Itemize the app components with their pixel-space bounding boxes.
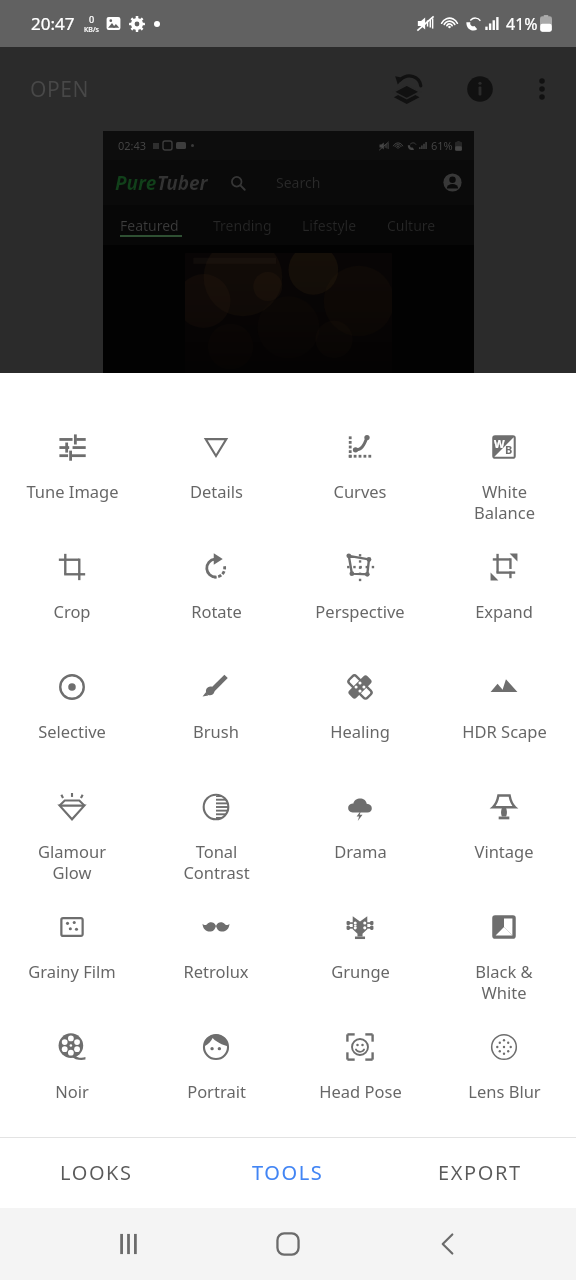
staticText: Black & White bbox=[475, 960, 533, 1004]
staticText: Lens Blur bbox=[468, 1080, 541, 1102]
staticText: Crop bbox=[53, 600, 91, 622]
button[interactable]: Tune Image bbox=[0, 433, 144, 553]
staticText: Portrait bbox=[187, 1080, 246, 1102]
button[interactable]: Brush bbox=[144, 673, 288, 793]
button[interactable]: Back bbox=[368, 1208, 528, 1280]
staticText: Trending bbox=[213, 216, 272, 235]
button[interactable]: Selective bbox=[0, 673, 144, 793]
button[interactable]: Grainy Film bbox=[0, 913, 144, 1033]
staticText: W bbox=[494, 436, 505, 451]
button[interactable]: EXPORT bbox=[384, 1137, 576, 1208]
staticText: 41% bbox=[506, 13, 538, 35]
button[interactable]: Head Pose bbox=[288, 1033, 432, 1137]
button[interactable]: Drama bbox=[288, 793, 432, 913]
button[interactable]: Details bbox=[144, 433, 288, 553]
button[interactable]: Info bbox=[454, 63, 506, 115]
button[interactable]: Rotate bbox=[144, 553, 288, 673]
button[interactable]: HDR Scape bbox=[432, 673, 576, 793]
staticText: Culture bbox=[387, 216, 436, 235]
staticText: Tune Image bbox=[26, 480, 119, 502]
staticText: Curves bbox=[333, 480, 387, 502]
staticText: 20:47 bbox=[31, 12, 75, 35]
button[interactable]: Recent apps bbox=[48, 1208, 208, 1280]
staticText: Vintage bbox=[474, 840, 534, 862]
staticText: Rotate bbox=[191, 600, 242, 622]
staticText: Healing bbox=[330, 720, 390, 742]
staticText: White Balance bbox=[474, 480, 535, 524]
button[interactable]: OPEN bbox=[16, 65, 104, 114]
staticText: Lifestyle bbox=[302, 216, 357, 235]
button[interactable]: W bbox=[432, 433, 576, 553]
staticText: Search bbox=[276, 173, 321, 192]
staticText: Tuber bbox=[157, 170, 208, 196]
button[interactable]: Black & White bbox=[432, 913, 576, 1033]
staticText: 61% bbox=[431, 138, 453, 153]
staticText: Perspective bbox=[315, 600, 405, 622]
button[interactable]: Glamour Glow bbox=[0, 793, 144, 913]
button[interactable]: Healing bbox=[288, 673, 432, 793]
staticText: Tonal Contrast bbox=[183, 840, 250, 884]
button[interactable]: Lens Blur bbox=[432, 1033, 576, 1137]
staticText: B bbox=[505, 442, 513, 457]
staticText: Noir bbox=[55, 1080, 89, 1102]
staticText: Grunge bbox=[331, 960, 390, 982]
staticText: EXPORT bbox=[438, 1159, 522, 1186]
button[interactable]: Undo bbox=[382, 63, 434, 115]
button[interactable]: Tonal Contrast bbox=[144, 793, 288, 913]
button[interactable]: Noir bbox=[0, 1033, 144, 1137]
staticText: LOOKS bbox=[60, 1159, 133, 1186]
button[interactable]: Expand bbox=[432, 553, 576, 673]
staticText: Pure bbox=[115, 170, 157, 196]
button[interactable]: LOOKS bbox=[0, 1137, 192, 1208]
button[interactable]: Portrait bbox=[144, 1033, 288, 1137]
staticText: Head Pose bbox=[319, 1080, 402, 1102]
staticText: Brush bbox=[193, 720, 239, 742]
staticText: Retrolux bbox=[183, 960, 249, 982]
staticText: Glamour Glow bbox=[38, 840, 106, 884]
button[interactable]: Vintage bbox=[432, 793, 576, 913]
staticText: 0 bbox=[89, 13, 95, 25]
staticText: Featured bbox=[120, 216, 179, 235]
button[interactable]: Curves bbox=[288, 433, 432, 553]
staticText: 02:43 bbox=[118, 138, 147, 153]
button[interactable]: Home bbox=[208, 1208, 368, 1280]
staticText: Grainy Film bbox=[28, 960, 116, 982]
staticText: Drama bbox=[334, 840, 387, 862]
button[interactable]: More options bbox=[518, 65, 566, 113]
button[interactable]: Crop bbox=[0, 553, 144, 673]
staticText: Selective bbox=[38, 720, 106, 742]
button[interactable]: Grunge bbox=[288, 913, 432, 1033]
staticText: HDR Scape bbox=[462, 720, 547, 742]
staticText: OPEN bbox=[30, 75, 90, 104]
button[interactable]: Perspective bbox=[288, 553, 432, 673]
button[interactable]: TOOLS bbox=[192, 1137, 384, 1208]
staticText: Expand bbox=[475, 600, 533, 622]
staticText: KB/s bbox=[84, 25, 99, 35]
staticText: Details bbox=[190, 480, 243, 502]
button[interactable]: Retrolux bbox=[144, 913, 288, 1033]
staticText: TOOLS bbox=[252, 1159, 324, 1186]
